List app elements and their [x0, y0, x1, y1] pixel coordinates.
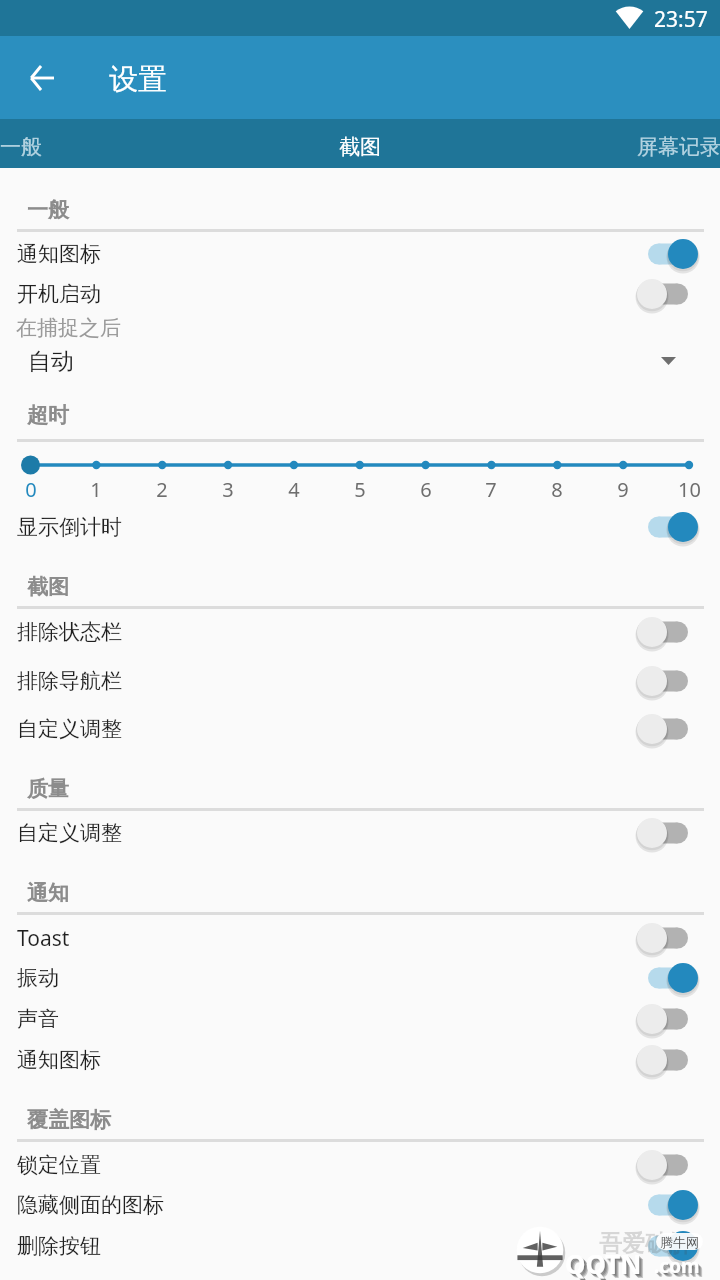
staticText: 4 — [288, 476, 300, 503]
staticText: 在捕捉之后 — [16, 315, 121, 341]
staticText: 超时 — [27, 402, 69, 428]
staticText: 0 — [25, 476, 37, 503]
staticText: 9 — [617, 476, 629, 503]
staticText: 截图 — [339, 134, 381, 160]
staticText: 1 — [90, 476, 102, 503]
button[interactable]: 隐藏侧面的图标 — [0, 1185, 720, 1225]
staticText: 腾牛网 — [660, 1234, 699, 1250]
staticText: .com — [655, 1254, 701, 1280]
button[interactable]: 通知图标 — [0, 1040, 720, 1080]
staticText: 隐藏侧面的图标 — [17, 1192, 648, 1218]
staticText: 通知图标 — [17, 1047, 648, 1073]
staticText: .com — [658, 1257, 704, 1280]
staticText: 锁定位置 — [17, 1152, 648, 1178]
staticText: 10 — [678, 476, 701, 503]
staticText: 23:57 — [654, 5, 708, 34]
button[interactable]: 显示倒计时 — [0, 507, 720, 547]
button[interactable]: 一般 — [0, 119, 166, 168]
staticText: Toast — [17, 924, 648, 953]
staticText: 一般 — [27, 197, 69, 223]
staticText: 振动 — [17, 965, 648, 991]
button[interactable]: 截图 — [215, 119, 505, 168]
staticText: QQTN — [569, 1250, 646, 1280]
staticText: 自动 — [28, 347, 74, 376]
staticText: 通知图标 — [17, 241, 648, 267]
staticText: .com — [654, 1253, 700, 1279]
button[interactable]: 屏幕记录 — [637, 119, 720, 168]
staticText: 2 — [156, 476, 168, 503]
staticText: 删除按钮 — [17, 1233, 648, 1259]
staticText: 设置 — [109, 61, 167, 98]
staticText: 自定义调整 — [17, 820, 648, 846]
staticText: 开机启动 — [17, 281, 648, 307]
button[interactable]: 锁定位置 — [0, 1145, 720, 1185]
button[interactable]: 自定义调整 — [0, 813, 720, 853]
staticText: 覆盖图标 — [27, 1107, 111, 1133]
staticText: .com — [657, 1256, 703, 1280]
staticText: 通知 — [27, 880, 69, 906]
button[interactable]: 通知图标 — [0, 234, 720, 274]
staticText: QQTN — [565, 1246, 642, 1280]
button[interactable]: 删除按钮 — [0, 1226, 720, 1266]
button[interactable]: 自定义调整 — [0, 709, 720, 749]
staticText: 吾爱破解 — [599, 1229, 691, 1258]
button[interactable]: 振动 — [0, 958, 720, 998]
button[interactable]: Timeout slider — [0, 445, 720, 485]
staticText: QQTN — [567, 1248, 644, 1280]
button[interactable]: 开机启动 — [0, 274, 720, 314]
staticText: 显示倒计时 — [17, 514, 648, 540]
staticText: 5 — [354, 476, 366, 503]
button[interactable]: 排除导航栏 — [0, 661, 720, 701]
button[interactable]: 排除状态栏 — [0, 612, 720, 652]
staticText: 质量 — [27, 776, 69, 802]
staticText: 8 — [551, 476, 563, 503]
staticText: QQTN — [568, 1249, 645, 1280]
staticText: 排除状态栏 — [17, 619, 648, 645]
staticText: 声音 — [17, 1006, 648, 1032]
button[interactable]: Back — [18, 54, 66, 102]
staticText: 排除导航栏 — [17, 668, 648, 694]
staticText: 自定义调整 — [17, 716, 648, 742]
staticText: 屏幕记录 — [637, 134, 720, 160]
staticText: 3 — [222, 476, 234, 503]
button[interactable]: Toast — [0, 918, 720, 958]
button[interactable]: 在捕捉之后 — [0, 311, 720, 377]
staticText: 截图 — [27, 574, 69, 600]
staticText: 6 — [420, 476, 432, 503]
staticText: 一般 — [0, 134, 42, 160]
button[interactable]: 声音 — [0, 999, 720, 1039]
staticText: 7 — [485, 476, 497, 503]
staticText: .com — [656, 1255, 702, 1280]
staticText: QQTN — [566, 1247, 643, 1280]
